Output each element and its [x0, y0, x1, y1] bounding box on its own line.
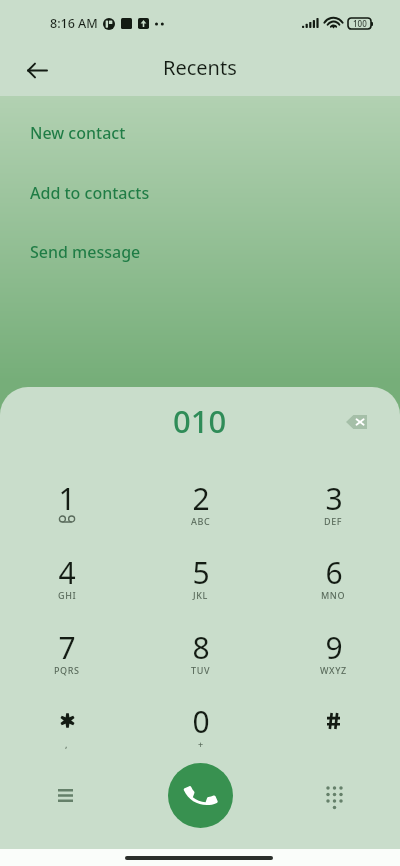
staticText: 100	[353, 18, 367, 29]
staticText: Recents	[163, 54, 237, 81]
staticText: 9	[325, 627, 343, 668]
staticText: 0	[192, 701, 210, 742]
staticText: ,	[65, 738, 69, 750]
staticText: 010	[173, 400, 227, 442]
button[interactable]: Call log	[43, 773, 88, 818]
button[interactable]: Back	[13, 46, 61, 94]
button[interactable]	[267, 685, 400, 759]
staticText: 4	[58, 552, 76, 593]
button[interactable]: Send message	[0, 237, 400, 267]
button[interactable]: ,	[0, 685, 134, 759]
button[interactable]: Dialpad	[312, 773, 357, 818]
staticText: ABC	[191, 515, 211, 527]
button[interactable]: New contact	[0, 118, 400, 148]
staticText: 3	[325, 478, 343, 519]
staticText: 2	[192, 478, 210, 519]
button[interactable]: Call	[168, 763, 233, 828]
staticText: 6	[325, 552, 343, 593]
staticText: +	[198, 738, 204, 750]
staticText: PQRS	[54, 664, 80, 676]
staticText: 7	[58, 627, 76, 668]
button[interactable]: 4	[0, 536, 134, 610]
button[interactable]: 8	[134, 611, 267, 685]
staticText: 8:16 AM	[50, 15, 98, 32]
button[interactable]: 2	[134, 462, 267, 536]
button[interactable]: 3	[267, 462, 400, 536]
button[interactable]: Backspace	[334, 400, 378, 444]
staticText: WXYZ	[320, 664, 347, 676]
staticText: GHI	[58, 589, 77, 601]
button[interactable]: Add to contacts	[0, 178, 400, 208]
button[interactable]: 7	[0, 611, 134, 685]
staticText: JKL	[193, 589, 208, 601]
staticText: 1	[58, 478, 76, 519]
staticText: 8	[192, 627, 210, 668]
button[interactable]: 5	[134, 536, 267, 610]
staticText: DEF	[324, 515, 343, 527]
staticText: MNO	[321, 589, 346, 601]
button[interactable]: 6	[267, 536, 400, 610]
staticText: TUV	[191, 664, 211, 676]
button[interactable]: 1	[0, 462, 134, 536]
button[interactable]: 0	[134, 685, 267, 759]
staticText: New contact	[30, 122, 126, 144]
staticText: Add to contacts	[30, 182, 150, 204]
button[interactable]: 9	[267, 611, 400, 685]
staticText: Send message	[30, 241, 141, 263]
staticText: 5	[192, 552, 210, 593]
